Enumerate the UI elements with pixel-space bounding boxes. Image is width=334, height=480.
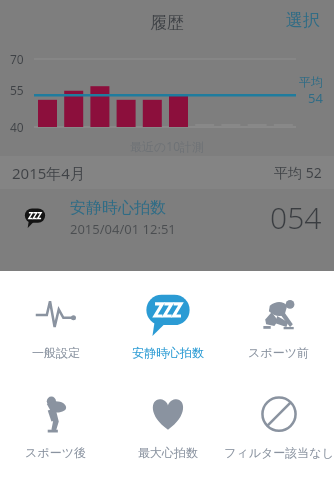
button[interactable]: 安静時心拍数 xyxy=(112,288,223,364)
staticText: スポーツ前 xyxy=(248,345,309,360)
staticText: 54 xyxy=(308,89,323,107)
button[interactable]: 選択 xyxy=(272,4,334,37)
staticText: 55 xyxy=(10,82,24,98)
staticText: 70 xyxy=(10,51,24,67)
staticText: 2015/04/01 12:51 xyxy=(70,220,176,238)
button[interactable]: 一般設定 xyxy=(0,288,111,364)
button[interactable]: 最大心拍数 xyxy=(112,388,223,464)
staticText: 安静時心拍数 xyxy=(132,345,204,360)
staticText: 最近の10計測 xyxy=(130,138,205,154)
staticText: 40 xyxy=(10,119,24,135)
button[interactable]: 安静時心拍数 xyxy=(0,189,334,246)
staticText: 選択 xyxy=(286,10,320,31)
staticText: 安静時心拍数 xyxy=(70,198,166,218)
button[interactable]: スポーツ後 xyxy=(0,388,111,464)
button[interactable]: スポーツ前 xyxy=(223,288,334,364)
staticText: 一般設定 xyxy=(32,345,80,360)
button[interactable]: フィルター該当なし xyxy=(223,388,334,464)
staticText: 最大心拍数 xyxy=(138,445,198,460)
staticText: 054 xyxy=(270,197,322,238)
staticText: スポーツ後 xyxy=(25,445,86,460)
staticText: 2015年4月 xyxy=(12,163,85,183)
staticText: 平均 52 xyxy=(274,163,322,182)
staticText: フィルター該当なし xyxy=(224,445,334,460)
staticText: 平均 xyxy=(299,74,323,89)
staticText: 履歴 xyxy=(150,12,184,33)
